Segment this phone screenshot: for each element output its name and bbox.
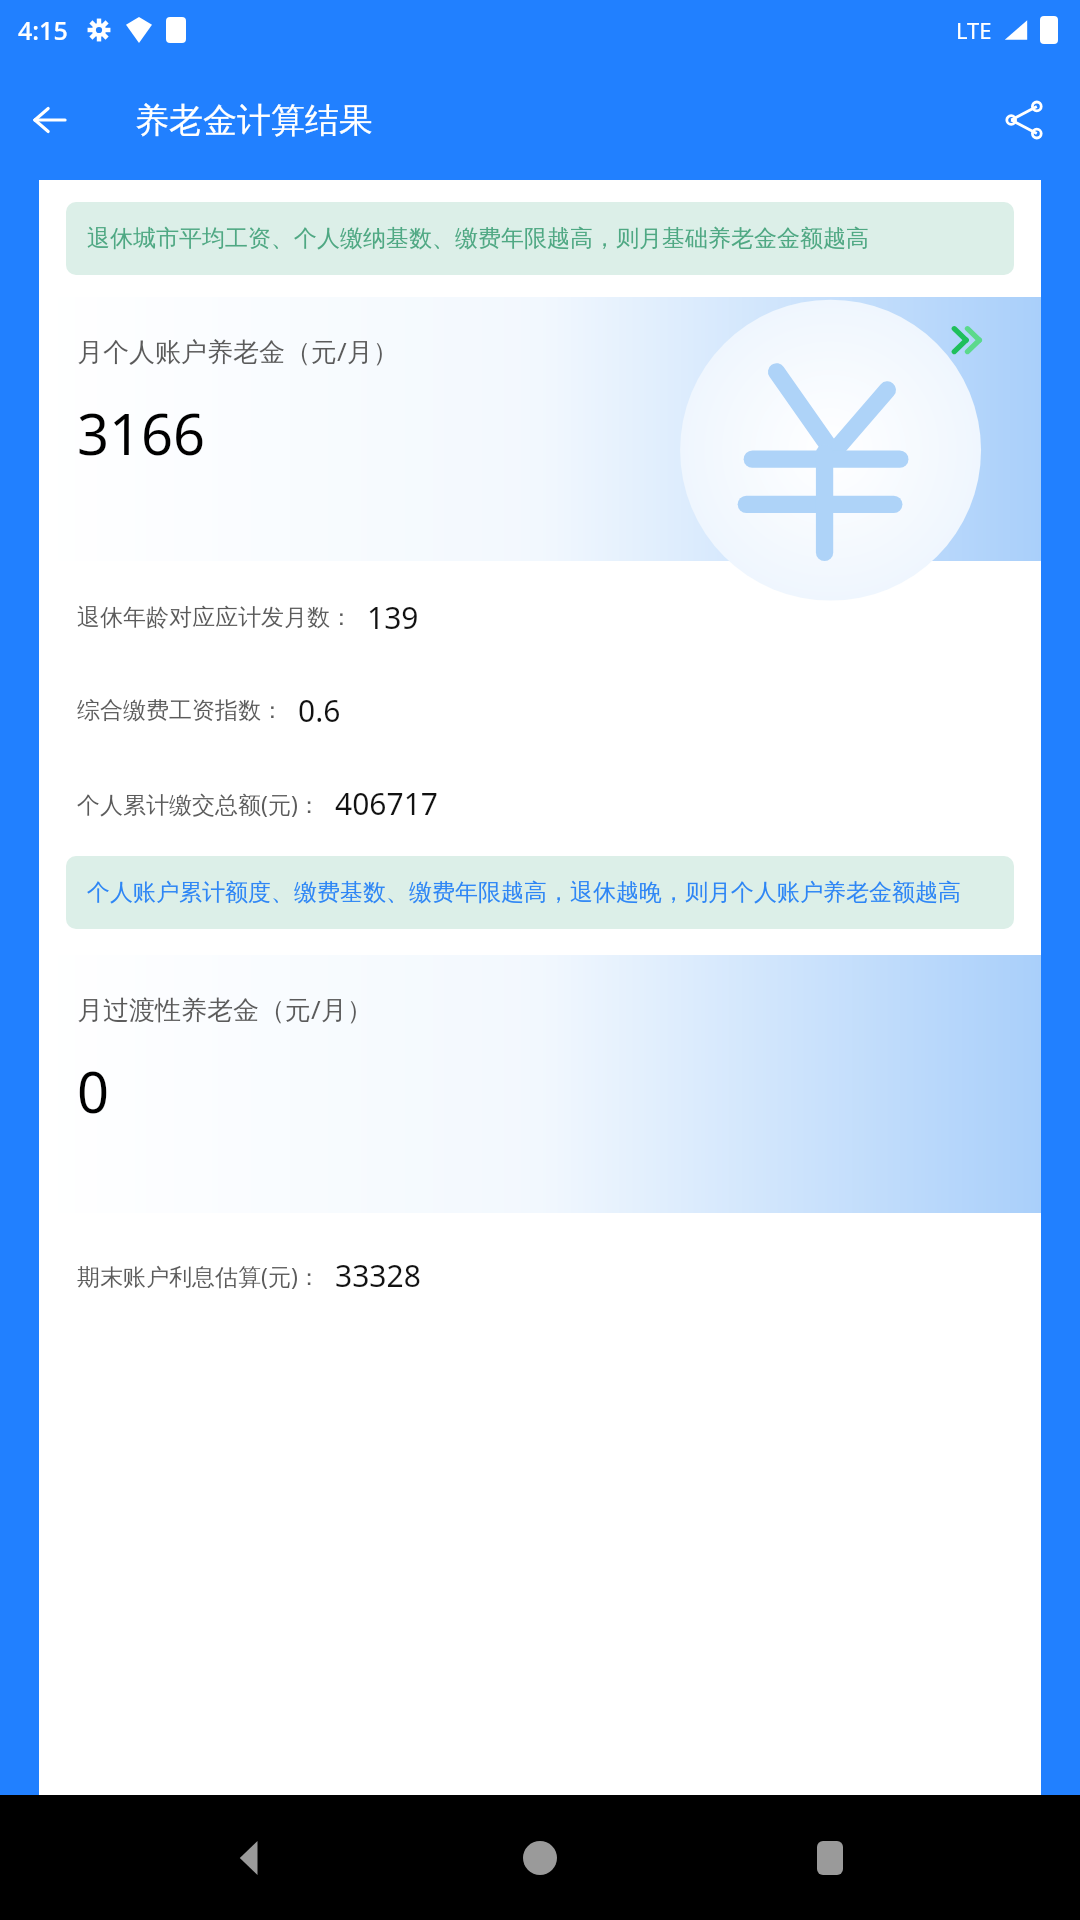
- button[interactable]: 月过渡性养老金（元/月）: [39, 955, 1041, 1213]
- staticText: 个人账户累计额度、缴费基数、缴费年限越高，退休越晚，则月个人账户养老金额越高: [87, 878, 961, 907]
- button[interactable]: 主页: [500, 1818, 580, 1898]
- staticText: 4:15: [18, 13, 68, 47]
- staticText: 月过渡性养老金（元/月）: [77, 991, 373, 1027]
- staticText: 139: [367, 597, 419, 638]
- button[interactable]: 个人累计缴交总额(元)：: [39, 757, 1041, 850]
- button[interactable]: 退休年龄对应应计发月数：: [39, 571, 1041, 664]
- button[interactable]: 返回: [210, 1818, 290, 1898]
- staticText: 0.6: [298, 690, 341, 731]
- staticText: 退休城市平均工资、个人缴纳基数、缴费年限越高，则月基础养老金金额越高: [87, 224, 869, 253]
- staticText: 3166: [77, 395, 206, 471]
- staticText: LTE: [956, 15, 992, 45]
- button[interactable]: 综合缴费工资指数：: [39, 664, 1041, 757]
- staticText: 综合缴费工资指数：: [77, 696, 284, 725]
- staticText: 期末账户利息估算(元)：: [77, 1260, 321, 1291]
- button[interactable]: 分享: [992, 88, 1056, 152]
- staticText: 0: [77, 1053, 110, 1129]
- button[interactable]: 退休城市平均工资、个人缴纳基数、缴费年限越高，则月基础养老金金额越高: [66, 202, 1014, 275]
- staticText: 月个人账户养老金（元/月）: [77, 333, 399, 369]
- staticText: 退休年龄对应应计发月数：: [77, 603, 353, 632]
- button[interactable]: 查看详情: [949, 319, 993, 363]
- staticText: 个人累计缴交总额(元)：: [77, 788, 321, 819]
- button[interactable]: 返回: [18, 88, 82, 152]
- staticText: 养老金计算结果: [135, 99, 373, 142]
- staticText: 406717: [335, 783, 438, 824]
- button[interactable]: 查看详情: [39, 297, 1041, 561]
- button[interactable]: 个人账户累计额度、缴费基数、缴费年限越高，退休越晚，则月个人账户养老金额越高: [66, 856, 1014, 929]
- staticText: 33328: [335, 1255, 421, 1296]
- button[interactable]: 最近任务: [790, 1818, 870, 1898]
- button[interactable]: 期末账户利息估算(元)：: [39, 1229, 1041, 1322]
